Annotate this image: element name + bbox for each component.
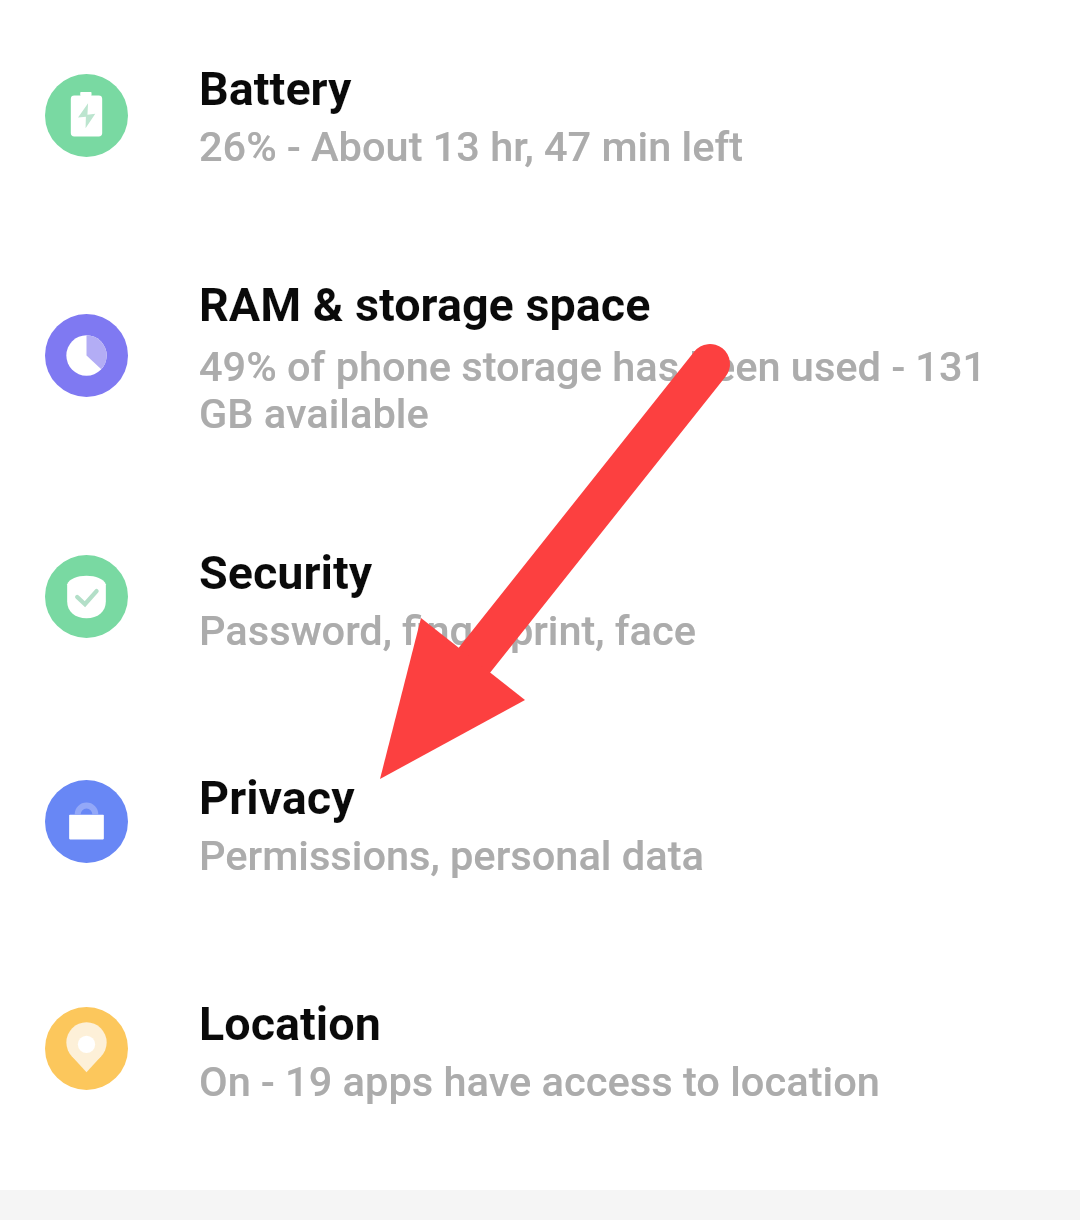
staticText: Privacy	[199, 771, 355, 826]
other: Location	[45, 1007, 128, 1090]
staticText: 26% - About 13 hr, 47 min left	[199, 122, 743, 171]
button[interactable]: Battery	[0, 62, 1080, 182]
staticText: Location	[199, 997, 381, 1052]
button[interactable]: RAM and storage space	[0, 278, 1080, 443]
staticText: Password, fingerprint, face	[199, 606, 697, 655]
staticText: Permissions, personal data	[199, 831, 705, 880]
staticText: On - 19 apps have access to location	[199, 1057, 880, 1106]
other: Battery	[45, 74, 128, 157]
button[interactable]: Privacy	[0, 771, 1080, 891]
button[interactable]: Location	[0, 997, 1080, 1117]
staticText: 49% of phone storage has been used - 131…	[199, 342, 1002, 438]
other: Privacy	[45, 780, 128, 863]
button[interactable]: Security	[0, 546, 1080, 666]
staticText: Security	[199, 546, 373, 601]
staticText: Battery	[199, 62, 352, 117]
staticText: RAM & storage space	[199, 278, 651, 333]
other: RAM and storage space	[45, 314, 128, 397]
other: Security	[45, 555, 128, 638]
